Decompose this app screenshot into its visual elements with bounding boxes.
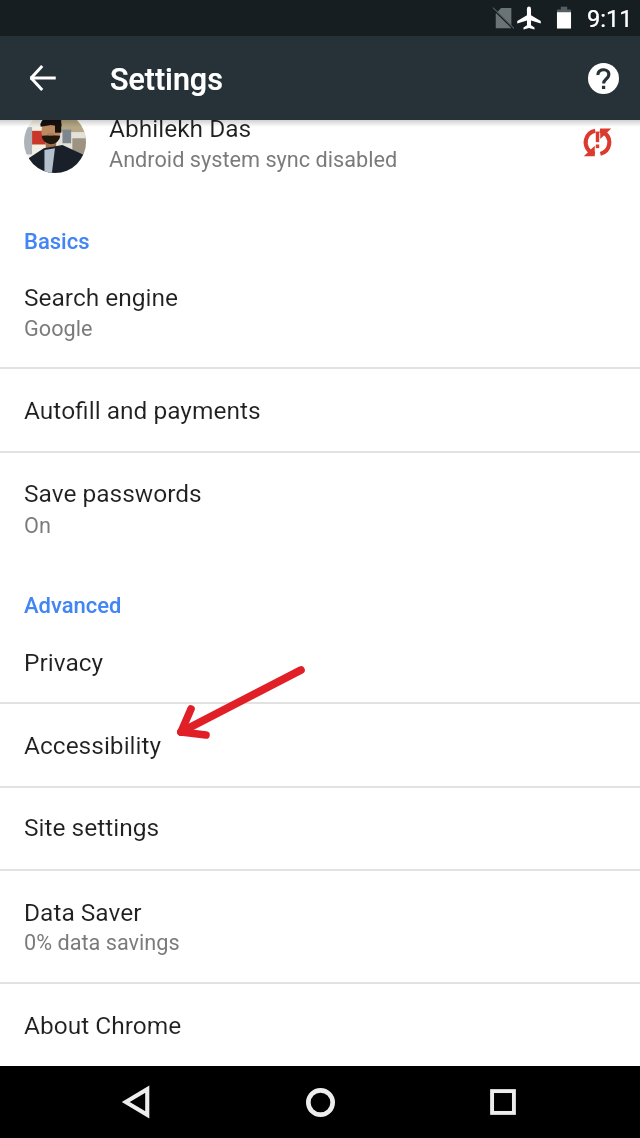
- button[interactable]: Save passwords: [0, 452, 640, 565]
- staticText: About Chrome: [24, 1011, 182, 1040]
- staticText: Google: [24, 316, 93, 341]
- button[interactable]: Privacy: [0, 619, 640, 703]
- staticText: On: [24, 513, 51, 538]
- staticText: Accessibility: [24, 731, 162, 760]
- staticText: Save passwords: [24, 479, 202, 508]
- button[interactable]: Basics: [0, 209, 640, 255]
- staticText: Site settings: [24, 813, 160, 842]
- staticText: Abhilekh Das: [109, 114, 252, 143]
- button[interactable]: Sync problem: [566, 111, 628, 173]
- staticText: Settings: [110, 62, 223, 98]
- staticText: Search engine: [24, 283, 179, 312]
- button[interactable]: Site settings: [0, 787, 640, 870]
- staticText: Advanced: [24, 593, 122, 619]
- button[interactable]: Recent apps: [467, 1066, 539, 1138]
- staticText: 9:11: [587, 5, 633, 33]
- button[interactable]: Navigate up: [10, 46, 74, 110]
- staticText: Privacy: [24, 648, 104, 677]
- staticText: Android system sync disabled: [109, 147, 398, 172]
- button[interactable]: Data Saver: [0, 870, 640, 983]
- staticText: Basics: [24, 229, 90, 255]
- button[interactable]: Accessibility: [0, 703, 640, 787]
- staticText: Data Saver: [24, 898, 142, 927]
- staticText: Autofill and payments: [24, 396, 261, 425]
- button[interactable]: Search engine: [0, 255, 640, 368]
- button[interactable]: Help and feedback: [571, 46, 635, 110]
- button[interactable]: Abhilekh Das: [0, 104, 640, 190]
- staticText: 0% data savings: [24, 930, 180, 955]
- button[interactable]: Back: [100, 1066, 172, 1138]
- button[interactable]: About Chrome: [0, 983, 640, 1066]
- button[interactable]: Advanced: [0, 573, 640, 619]
- button[interactable]: Autofill and payments: [0, 368, 640, 452]
- button[interactable]: Home: [284, 1066, 356, 1138]
